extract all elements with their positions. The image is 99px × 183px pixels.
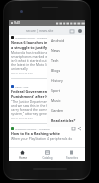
button[interactable]: Tech — [51, 55, 85, 65]
staticText: How to fix a flashing white Playstation … — [11, 131, 81, 136]
staticText: NEWS · SITE — [15, 85, 29, 88]
staticText: Blogs — [51, 68, 61, 73]
staticText: ANDROID POLICE · ANDROID — [15, 36, 48, 39]
staticText: Android — [51, 38, 65, 43]
button[interactable]: Catalog — [36, 148, 59, 161]
staticText: Federal Government 'Eh' — [11, 89, 56, 94]
button[interactable]: History — [51, 75, 85, 85]
staticText: universally — [11, 66, 28, 70]
staticText: Punishment' after Hack — [11, 94, 55, 99]
staticText: History — [51, 78, 63, 83]
staticText: News — [51, 48, 60, 53]
button[interactable]: Music — [51, 95, 85, 105]
button[interactable]: Sport — [51, 85, 85, 95]
button[interactable]: News — [51, 45, 85, 55]
staticText: When your PlayStation 4 peripherals do t… — [11, 136, 81, 140]
button[interactable]: Home — [11, 148, 34, 161]
staticText: Tech — [51, 58, 59, 63]
staticText: Favorites — [66, 156, 78, 160]
staticText: 9:41 — [14, 21, 21, 25]
staticText: the latest in the Moto lineup is — [11, 62, 58, 66]
button[interactable]: ANDROID POLICE · ANDROID — [11, 35, 81, 78]
staticText: system," attorney general — [11, 111, 51, 115]
staticText: Music — [51, 98, 61, 103]
button[interactable]: Android — [51, 35, 85, 45]
staticText: Oct 21 2014 at 9:20 — [11, 71, 33, 74]
staticText: a struggle to justify the price — [11, 45, 65, 50]
button[interactable]: Read articles* — [51, 115, 85, 125]
staticText: secure | news.site — [26, 29, 54, 33]
button[interactable]: Blogs — [51, 65, 85, 75]
staticText: "The Justice Department said — [11, 99, 56, 103]
staticText: Home — [19, 156, 27, 160]
staticText: Oct 21 2014 at 8:03 — [11, 116, 33, 119]
button[interactable]: More options — [76, 27, 84, 35]
button[interactable]: Share — [77, 126, 81, 130]
button[interactable]: Bookmark — [71, 126, 75, 130]
staticText: Garden — [51, 108, 64, 113]
staticText: Motorola has traditionally made — [11, 50, 61, 54]
staticText: Sport — [51, 88, 60, 93]
staticText: Nexus 6 launches in the US as — [11, 40, 66, 45]
staticText: isn't what it started out to be, — [11, 58, 57, 62]
button[interactable]: ANDROID CENTRAL · ANDROID — [11, 124, 81, 144]
button[interactable]: Tabs — [68, 27, 76, 35]
staticText: smartphones marked with an — [11, 54, 57, 58]
button[interactable]: NEWS · SITE — [11, 79, 81, 123]
staticText: carry forward the commitment — [11, 107, 59, 111]
button[interactable]: Garden — [51, 105, 85, 115]
staticText: Read articles* — [51, 118, 76, 123]
staticText: and we saw this in the first — [11, 103, 53, 107]
button[interactable]: Favorites — [60, 148, 83, 161]
staticText: ANDROID CENTRAL · ANDROID — [15, 127, 50, 130]
staticText: Catalog — [42, 156, 53, 160]
